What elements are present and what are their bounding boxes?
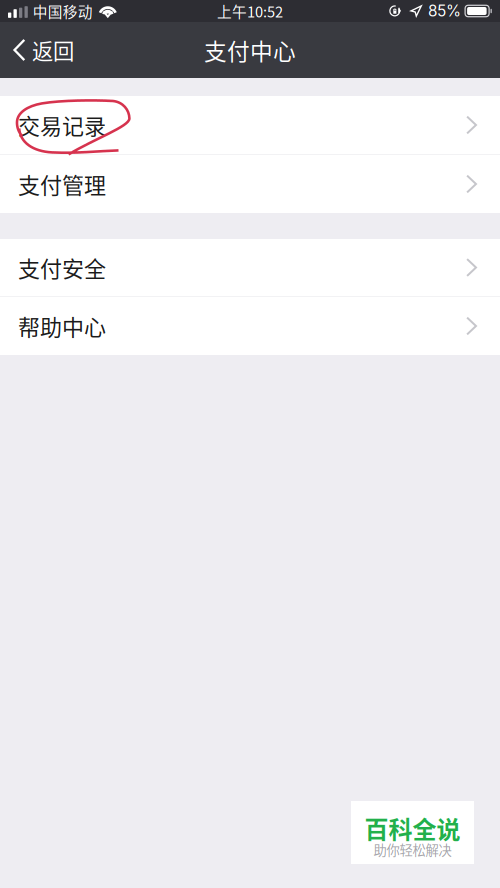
staticText: 支付中心 (204, 34, 296, 66)
button[interactable]: 帮助中心 (0, 297, 500, 355)
button[interactable]: 返回 (0, 22, 86, 78)
staticText: 百科全说 (364, 811, 460, 845)
staticText: 助你轻松解决 (373, 840, 451, 859)
button[interactable]: 交易记录 (0, 96, 500, 154)
staticText: 交易记录 (18, 109, 106, 141)
staticText: 返回 (32, 35, 74, 65)
staticText: 中国移动 (33, 0, 93, 22)
staticText: 帮助中心 (18, 310, 106, 342)
staticText: 支付管理 (18, 168, 106, 200)
button[interactable]: 支付安全 (0, 239, 500, 296)
staticText: 上午10:52 (217, 0, 283, 22)
button[interactable]: 支付管理 (0, 155, 500, 213)
staticText: 85% (428, 2, 461, 20)
staticText: 支付安全 (18, 252, 106, 283)
